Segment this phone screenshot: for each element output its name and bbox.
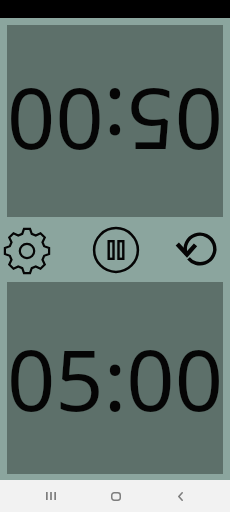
button[interactable]: Reset [170,222,223,275]
button[interactable]: Home [92,480,140,512]
staticText: 05:00 [7,321,223,436]
button[interactable]: Recents [27,480,75,512]
button[interactable]: Pause [89,223,142,276]
staticText: 05:00 [7,64,223,179]
button[interactable]: 05:00 [7,282,223,474]
button[interactable]: 05:00 [7,25,223,217]
button[interactable]: Settings [0,224,53,277]
button[interactable]: Back [156,480,204,512]
